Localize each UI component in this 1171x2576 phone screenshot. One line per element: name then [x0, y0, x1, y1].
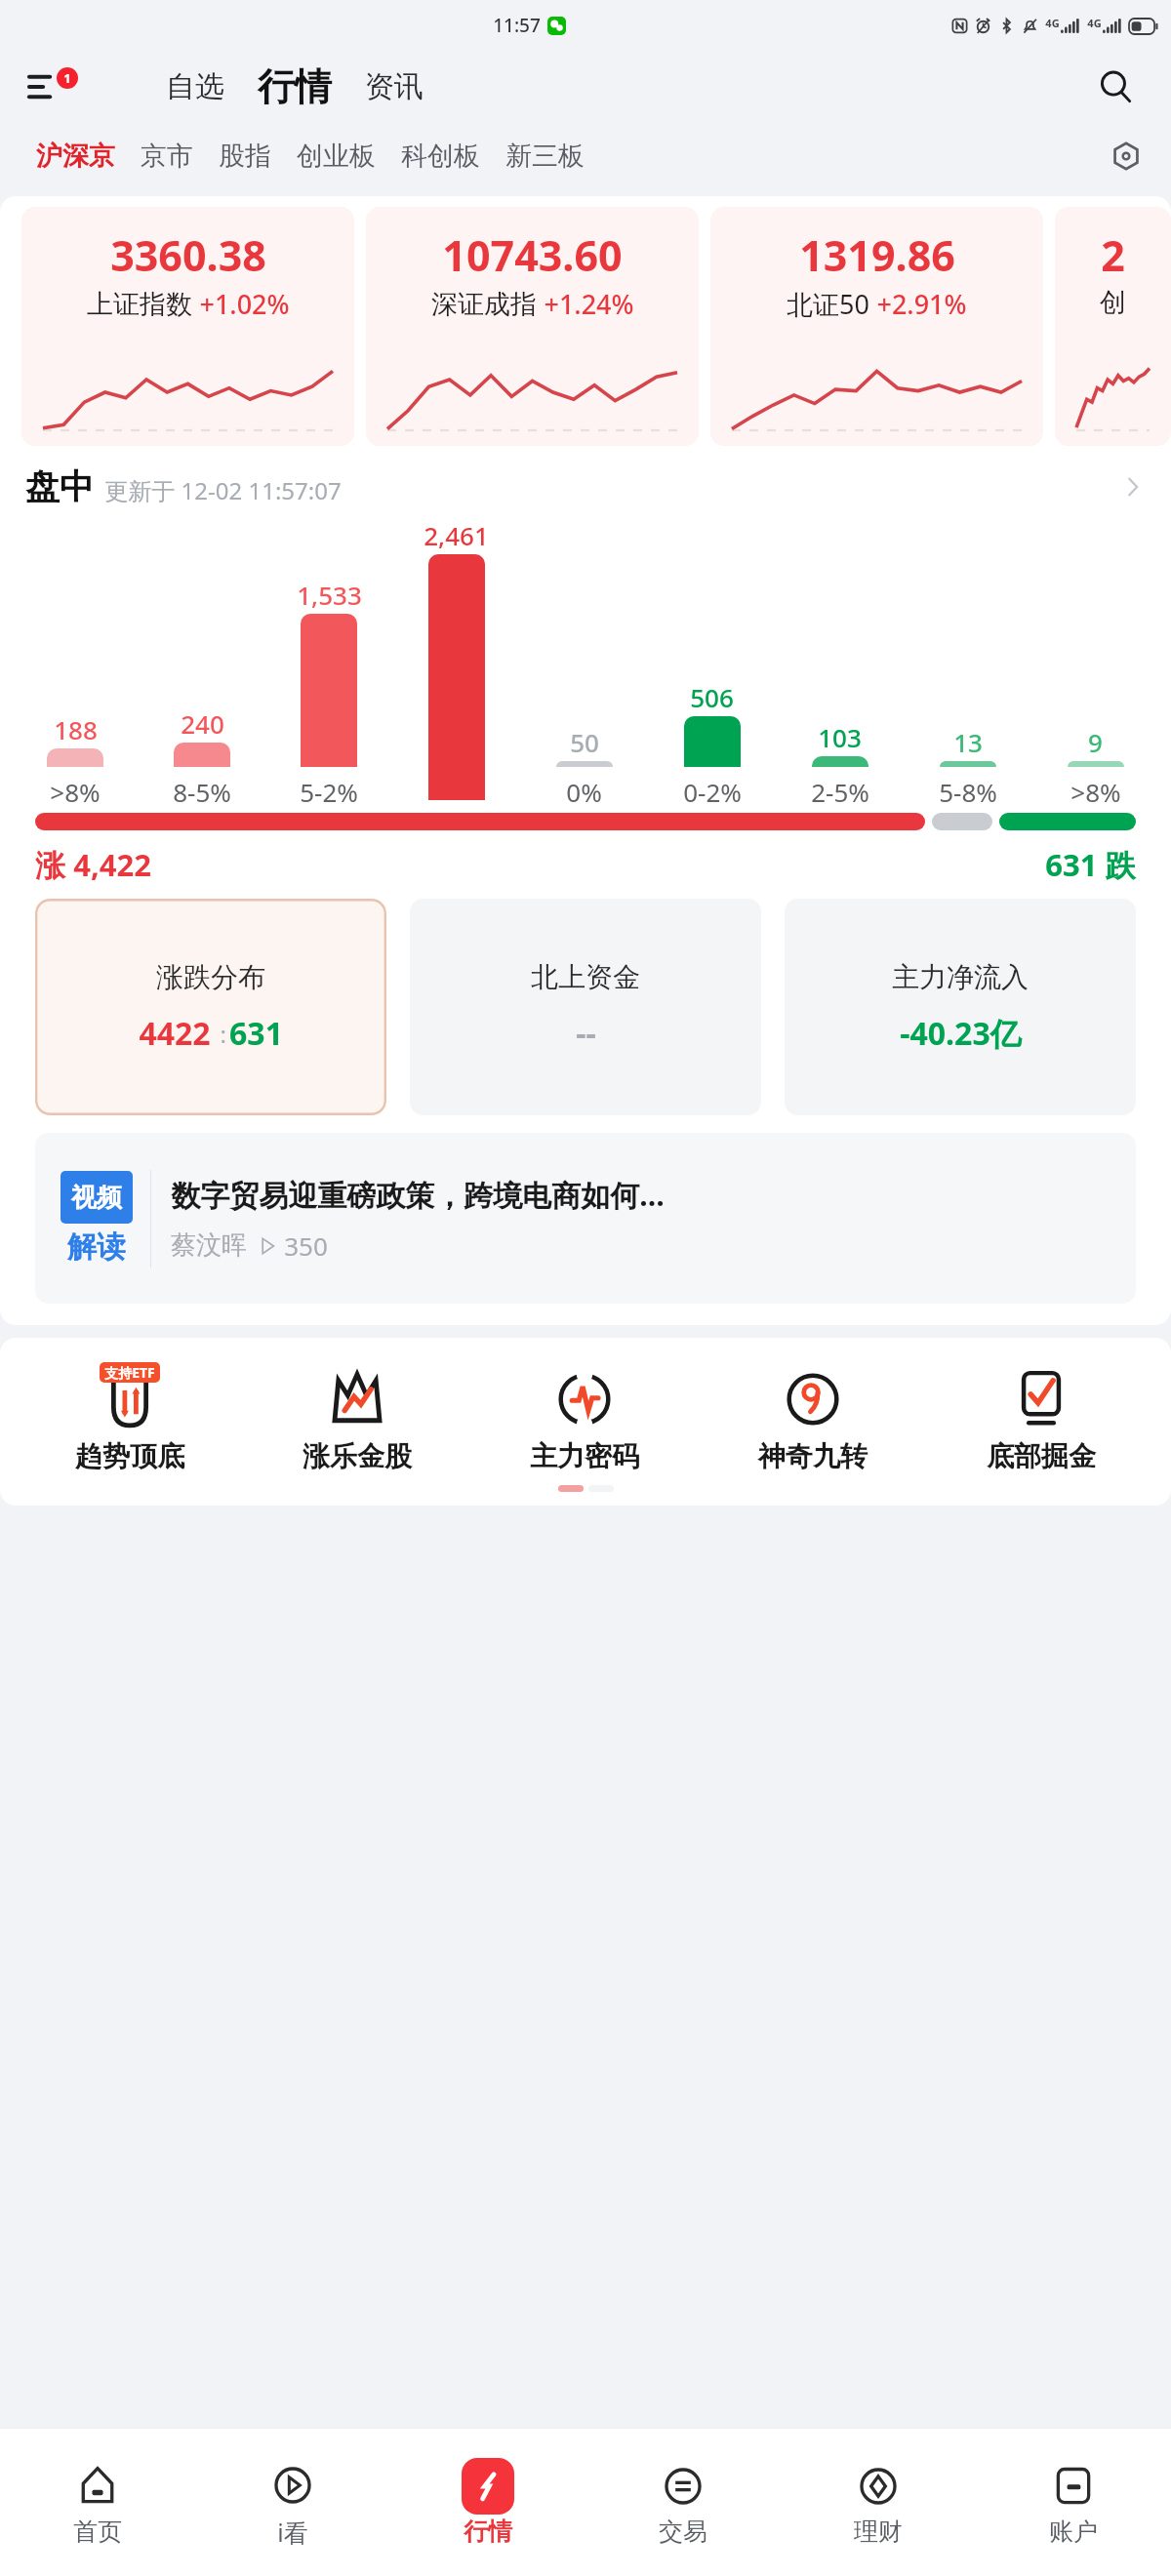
staticText: 创业板	[297, 140, 376, 173]
staticText: 8-5%	[173, 775, 231, 809]
button[interactable]: 神奇九转	[699, 1357, 927, 1477]
staticText: >8%	[1070, 775, 1121, 809]
staticText: 1	[63, 69, 71, 87]
button[interactable]: 2	[1055, 207, 1171, 446]
staticText: 理财	[854, 2516, 903, 2547]
button[interactable]: 沪深京	[23, 134, 128, 179]
button[interactable]: 京市	[128, 134, 206, 179]
button[interactable]: 主力净流入	[785, 899, 1136, 1115]
button[interactable]: 资讯	[355, 60, 433, 113]
staticText: 631 跌	[1045, 844, 1136, 885]
staticText: +2.91%	[876, 286, 967, 322]
staticText: >8%	[50, 775, 101, 809]
staticText: 解读	[67, 1228, 126, 1266]
button[interactable]: Settings	[1103, 133, 1150, 180]
button[interactable]: 科创板	[388, 134, 493, 179]
staticText: 5-2%	[300, 775, 358, 809]
staticText: :	[211, 1018, 229, 1050]
staticText: 新三板	[505, 140, 585, 173]
staticText: 0-2%	[683, 775, 742, 809]
button[interactable]: 1319.86	[710, 207, 1043, 446]
button[interactable]: 涨跌分布	[35, 899, 386, 1115]
staticText: 盘中	[25, 465, 94, 508]
staticText: 自选	[166, 68, 224, 105]
staticText: i看	[277, 2516, 308, 2549]
staticText: 沪深京	[36, 140, 115, 173]
staticText: 神奇九转	[758, 1439, 868, 1473]
button[interactable]: 股指	[206, 134, 284, 179]
staticText: 1,533	[297, 578, 362, 612]
staticText: 视频	[71, 1182, 122, 1214]
staticText: 涨乐金股	[303, 1439, 412, 1473]
staticText: 股指	[219, 140, 271, 173]
staticText: 蔡汶晖	[171, 1229, 247, 1262]
button[interactable]: 支持ETF	[16, 1357, 243, 1477]
staticText: 2	[1101, 226, 1125, 284]
staticText: 涨 4,422	[35, 844, 151, 885]
button[interactable]: Menu	[29, 61, 80, 112]
staticText: 1319.86	[799, 226, 955, 284]
button[interactable]: 理财	[781, 2429, 976, 2576]
button[interactable]: 底部掘金	[927, 1357, 1155, 1477]
staticText: 4422	[139, 1012, 211, 1055]
staticText: 趋势顶底	[75, 1439, 184, 1473]
staticText: 2,461	[424, 518, 489, 552]
button[interactable]: 10743.60	[366, 207, 699, 446]
staticText: 行情	[258, 63, 332, 110]
staticText: 13	[953, 725, 983, 759]
button[interactable]: 主力密码	[470, 1357, 699, 1477]
button[interactable]: 自选	[156, 60, 234, 113]
staticText: 支持ETF	[104, 1363, 155, 1382]
staticText: 350	[284, 1228, 328, 1263]
staticText: 数字贸易迎重磅政策，跨境电商如何…	[171, 1175, 665, 1215]
staticText: --	[576, 1012, 596, 1055]
button[interactable]: 北上资金	[410, 899, 761, 1115]
button[interactable]: 行情	[248, 60, 342, 114]
staticText: 科创板	[401, 140, 480, 173]
button[interactable]: 账户	[976, 2429, 1171, 2576]
staticText: 4G	[1087, 16, 1102, 30]
button[interactable]: 交易	[585, 2429, 781, 2576]
staticText: 主力密码	[530, 1439, 639, 1473]
staticText: 10743.60	[442, 226, 623, 284]
staticText: 103	[818, 720, 862, 754]
staticText: +1.02%	[199, 286, 290, 322]
staticText: 涨跌分布	[156, 960, 265, 994]
button[interactable]: 新三板	[493, 134, 597, 179]
button[interactable]: Search	[1089, 60, 1142, 113]
staticText: 0%	[566, 775, 602, 809]
staticText: 北证50	[787, 286, 869, 322]
staticText: 京市	[141, 140, 193, 173]
staticText: 506	[690, 680, 734, 714]
staticText: 行情	[464, 2516, 512, 2547]
staticText: 50	[570, 725, 599, 759]
staticText: 主力净流入	[892, 960, 1029, 994]
staticText: 首页	[73, 2516, 122, 2547]
button[interactable]: 行情	[390, 2429, 585, 2576]
staticText: 深证成指	[431, 288, 537, 321]
staticText: +1.24%	[544, 286, 634, 322]
staticText: 4G	[1045, 16, 1060, 30]
staticText: 交易	[659, 2516, 707, 2547]
button[interactable]: i看	[195, 2429, 390, 2576]
staticText: 账户	[1049, 2516, 1098, 2547]
staticText: 631	[229, 1012, 283, 1055]
staticText: -40.23亿	[900, 1012, 1022, 1055]
button[interactable]: 盘中	[0, 460, 1171, 514]
staticText: 北上资金	[531, 960, 640, 994]
staticText: 2-5%	[811, 775, 869, 809]
staticText: 9	[1088, 725, 1103, 759]
staticText: 上证指数	[87, 288, 192, 321]
button[interactable]: 视频	[35, 1133, 1136, 1304]
staticText: 240	[181, 706, 224, 741]
staticText: 底部掘金	[987, 1439, 1096, 1473]
staticText: 188	[54, 712, 98, 746]
staticText: 更新于 12-02 11:57:07	[104, 474, 342, 506]
staticText: 11:57	[493, 13, 541, 38]
button[interactable]: 涨乐金股	[243, 1357, 470, 1477]
button[interactable]: 3360.38	[21, 207, 354, 446]
button[interactable]: 首页	[0, 2429, 195, 2576]
staticText: 创	[1100, 286, 1126, 319]
button[interactable]: 创业板	[284, 134, 388, 179]
